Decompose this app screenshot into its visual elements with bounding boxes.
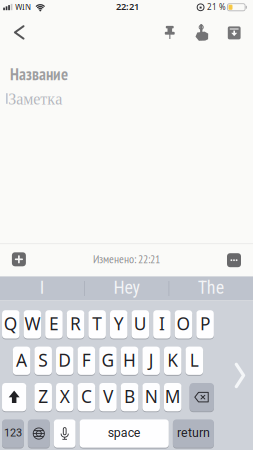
- button[interactable]: H: [121, 346, 138, 375]
- staticText: M: [165, 385, 181, 408]
- staticText: I: [159, 312, 165, 335]
- button[interactable]: C: [78, 382, 95, 412]
- button[interactable]: [54, 419, 76, 448]
- staticText: N: [145, 385, 158, 408]
- button[interactable]: [28, 419, 50, 448]
- button[interactable]: F: [78, 346, 95, 375]
- staticText: Заметка: [8, 90, 62, 108]
- button[interactable]: [190, 382, 214, 412]
- button[interactable]: I: [153, 310, 171, 339]
- staticText: Название: [10, 63, 68, 85]
- button[interactable]: [227, 253, 241, 267]
- button[interactable]: Z: [34, 382, 52, 412]
- staticText: I: [40, 277, 45, 298]
- staticText: V: [103, 385, 113, 408]
- staticText: W: [24, 312, 40, 335]
- button[interactable]: Q: [2, 310, 19, 339]
- staticText: Q: [4, 312, 18, 335]
- staticText: 21 %: [207, 2, 226, 12]
- staticText: S: [38, 348, 48, 371]
- button[interactable]: W: [24, 310, 41, 339]
- button[interactable]: M: [164, 382, 181, 412]
- button[interactable]: [233, 362, 247, 389]
- staticText: L: [190, 348, 199, 371]
- button[interactable]: return: [173, 419, 214, 448]
- staticText: WIN: [15, 2, 31, 12]
- staticText: K: [167, 348, 178, 371]
- button[interactable]: L: [185, 346, 203, 375]
- staticText: P: [200, 312, 210, 335]
- staticText: T: [92, 312, 102, 335]
- button[interactable]: N: [142, 382, 160, 412]
- button[interactable]: 123: [2, 419, 24, 448]
- button[interactable]: [192, 22, 212, 42]
- staticText: B: [124, 385, 135, 408]
- button[interactable]: S: [34, 346, 52, 375]
- staticText: Z: [38, 385, 48, 408]
- staticText: C: [81, 385, 92, 408]
- button[interactable]: J: [142, 346, 160, 375]
- staticText: 123: [4, 426, 22, 439]
- staticText: J: [149, 348, 154, 371]
- staticText: space: [108, 425, 141, 440]
- button[interactable]: R: [67, 310, 84, 339]
- button[interactable]: [160, 22, 180, 42]
- button[interactable]: I: [1, 277, 84, 300]
- staticText: R: [70, 312, 81, 335]
- button[interactable]: U: [132, 310, 149, 339]
- button[interactable]: The: [169, 277, 252, 300]
- button[interactable]: space: [80, 419, 169, 448]
- button[interactable]: K: [164, 346, 181, 375]
- button[interactable]: Hey: [85, 277, 168, 300]
- button[interactable]: A: [13, 346, 30, 375]
- button[interactable]: O: [175, 310, 192, 339]
- button[interactable]: D: [56, 346, 73, 375]
- staticText: X: [60, 385, 70, 408]
- staticText: Hey: [113, 277, 139, 298]
- staticText: E: [49, 312, 59, 335]
- button[interactable]: E: [45, 310, 63, 339]
- button[interactable]: X: [56, 382, 73, 412]
- staticText: F: [82, 348, 91, 371]
- button[interactable]: [12, 252, 26, 266]
- staticText: Изменено: 22:21: [93, 251, 160, 267]
- button[interactable]: V: [99, 382, 117, 412]
- staticText: Y: [114, 312, 124, 335]
- staticText: O: [176, 312, 190, 335]
- staticText: A: [16, 348, 27, 371]
- staticText: G: [101, 348, 114, 371]
- button[interactable]: T: [88, 310, 106, 339]
- button[interactable]: B: [121, 382, 138, 412]
- button[interactable]: G: [99, 346, 117, 375]
- staticText: D: [58, 348, 71, 371]
- button[interactable]: P: [196, 310, 214, 339]
- staticText: return: [177, 425, 210, 440]
- button[interactable]: [224, 23, 244, 43]
- button[interactable]: Y: [110, 310, 127, 339]
- staticText: H: [123, 348, 136, 371]
- button[interactable]: [2, 382, 26, 412]
- staticText: The: [198, 277, 224, 298]
- button[interactable]: [11, 23, 27, 41]
- staticText: 22:21: [116, 0, 139, 13]
- staticText: U: [134, 312, 147, 335]
